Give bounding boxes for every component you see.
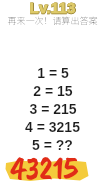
button[interactable]: 2 = 15 bbox=[0, 82, 105, 100]
staticText: 4 = 3215 bbox=[25, 119, 80, 135]
button[interactable]: 3 = 215 bbox=[0, 100, 105, 118]
staticText: 1 = 5 bbox=[37, 65, 69, 81]
staticText: Lv.113 bbox=[0, 0, 105, 16]
staticText: Lv.113 bbox=[0, 0, 105, 16]
button[interactable]: 43215 bbox=[11, 148, 78, 185]
button[interactable]: Lv.113 bbox=[0, 0, 105, 16]
staticText: 5 = ?? bbox=[32, 137, 73, 153]
staticText: 2 = 15 bbox=[33, 83, 73, 99]
button[interactable]: 5 = ?? bbox=[0, 136, 105, 154]
staticText: Lv.113 bbox=[1, 0, 105, 16]
staticText: 再来一次！请算出答案 bbox=[0, 14, 105, 27]
staticText: 3 = 215 bbox=[29, 101, 77, 117]
staticText: Lv.113 bbox=[0, 0, 105, 16]
button[interactable]: 1 = 5 bbox=[0, 64, 105, 82]
button[interactable]: 4 = 3215 bbox=[0, 118, 105, 136]
staticText: Lv.113 bbox=[0, 0, 105, 17]
